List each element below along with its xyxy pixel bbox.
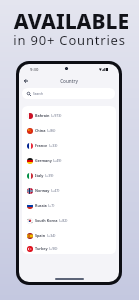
button[interactable]: Search: [22, 88, 115, 99]
staticText: France: [35, 143, 48, 148]
staticText: (+90): [49, 246, 58, 251]
staticText: (+82): [59, 218, 68, 223]
button[interactable]: Germany: [22, 153, 116, 168]
button[interactable]: France: [22, 138, 116, 153]
staticText: Norway: [35, 188, 50, 193]
staticText: Italy: [35, 173, 44, 178]
staticText: (+47): [51, 188, 60, 193]
staticText: (+33): [49, 143, 58, 148]
staticText: Bahrain: [35, 113, 50, 118]
staticText: Spain: [35, 233, 46, 238]
staticText: (+973): [51, 113, 62, 118]
staticText: (+7): [48, 203, 55, 208]
staticText: in 90+ Countries: [0, 31, 139, 49]
staticText: (+86): [47, 128, 56, 133]
staticText: Country: [19, 78, 119, 84]
button[interactable]: South Korea: [22, 213, 116, 228]
button[interactable]: China: [22, 123, 116, 138]
staticText: (+39): [45, 173, 54, 178]
button[interactable]: Italy: [22, 168, 116, 183]
button[interactable]: Back: [21, 76, 31, 86]
staticText: AVAILABLE: [2, 7, 139, 36]
staticText: South Korea: [35, 218, 58, 223]
staticText: 9:30: [30, 67, 39, 73]
staticText: (+34): [47, 233, 56, 238]
button[interactable]: Bahrain: [22, 108, 116, 123]
button[interactable]: Turkey: [22, 243, 116, 254]
staticText: Russia: [35, 203, 47, 208]
staticText: (+49): [53, 158, 62, 163]
staticText: Turkey: [35, 246, 48, 251]
button[interactable]: Norway: [22, 183, 116, 198]
staticText: Search: [33, 92, 44, 96]
button[interactable]: Russia: [22, 198, 116, 213]
button[interactable]: Spain: [22, 228, 116, 243]
staticText: China: [35, 128, 46, 133]
staticText: Germany: [35, 158, 52, 163]
